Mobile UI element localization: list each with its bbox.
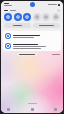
button[interactable]: Settings <box>57 9 60 12</box>
button[interactable]: Quick setting 4 <box>33 13 41 21</box>
button[interactable]: Quick setting 1 <box>4 13 12 21</box>
button[interactable]: Quick setting 5 <box>42 13 50 21</box>
button[interactable]: Quick setting 2 <box>14 13 22 21</box>
button[interactable]: Home <box>31 108 34 111</box>
button[interactable]: Quick setting 3 <box>23 13 31 21</box>
button[interactable]: Recents <box>54 108 57 111</box>
button[interactable] <box>33 23 60 28</box>
button[interactable] <box>17 53 37 56</box>
button[interactable] <box>4 23 31 28</box>
button[interactable] <box>52 54 60 55</box>
button[interactable]: Quick setting 6 <box>52 13 60 21</box>
button[interactable] <box>3 31 61 41</box>
button[interactable]: Back <box>7 108 10 111</box>
button[interactable] <box>3 41 61 51</box>
